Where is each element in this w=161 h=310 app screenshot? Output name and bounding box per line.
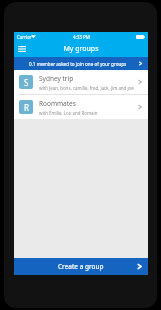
staticText: with Jean, boris, camille, fred, jack, j… <box>39 85 134 91</box>
staticText: S <box>24 77 29 88</box>
staticText: with Emilie, Lou and Romain <box>39 110 98 116</box>
staticText: Carrier <box>17 34 32 40</box>
staticText: 4:33 PM <box>73 34 90 40</box>
staticText: Roommates <box>39 99 76 108</box>
button[interactable]: R <box>14 95 148 119</box>
staticText: 0.1 member asked to join one of your gro… <box>29 61 127 67</box>
button[interactable]: S <box>14 70 148 94</box>
staticText: My groups <box>63 44 99 54</box>
staticText: Sydney trip <box>39 74 74 83</box>
button[interactable]: Create a group <box>14 258 148 275</box>
button[interactable]: Open navigation menu <box>14 41 30 57</box>
staticText: Create a group <box>58 262 104 271</box>
button[interactable]: 0.1 member asked to join one of your gro… <box>14 57 148 70</box>
staticText: R <box>24 102 29 113</box>
